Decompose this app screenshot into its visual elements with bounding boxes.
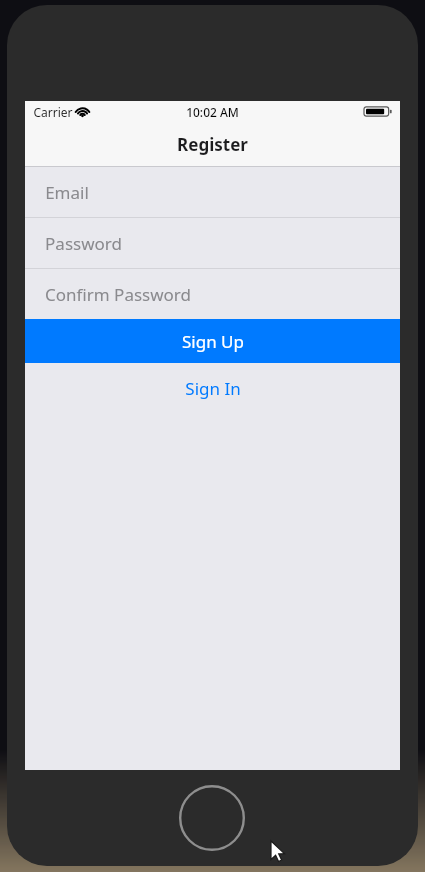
staticText: Email	[45, 181, 89, 204]
button[interactable]: Sign Up	[25, 319, 400, 363]
staticText: Password	[45, 232, 122, 255]
button[interactable]: Sign In	[25, 363, 400, 413]
staticText: 10:02 AM	[186, 104, 239, 120]
button[interactable]: Password	[25, 218, 400, 268]
button[interactable]: Home	[179, 785, 245, 851]
button[interactable]: Confirm Password	[25, 269, 400, 319]
staticText: Sign Up	[182, 330, 244, 353]
staticText: Register	[177, 133, 248, 156]
staticText: Confirm Password	[45, 283, 191, 306]
staticText: Sign In	[185, 377, 241, 400]
staticText: Carrier	[33, 104, 73, 120]
button[interactable]: Email	[25, 167, 400, 217]
